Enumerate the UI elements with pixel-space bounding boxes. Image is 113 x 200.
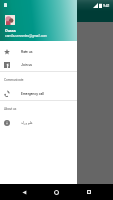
button[interactable]: هلو ورلد [0, 116, 77, 129]
staticText: About us [4, 107, 17, 111]
button[interactable]: Join us [0, 58, 77, 71]
staticText: Join us [21, 63, 33, 67]
staticText: Communicate [4, 78, 24, 82]
button[interactable]: Emergency call [0, 87, 77, 100]
button[interactable]: Back [16, 184, 33, 200]
staticText: Emergency call [21, 92, 45, 96]
staticText: Rate us [21, 50, 33, 54]
staticText: Ousss [5, 28, 16, 33]
staticText: camila.servantes@gmail.com [5, 34, 48, 38]
button[interactable]: Home [48, 184, 65, 200]
button[interactable]: Rate us [0, 45, 77, 58]
button[interactable]: Recents [80, 184, 97, 200]
staticText: هلو ورلد [21, 121, 33, 125]
staticText: 9:41 [103, 4, 110, 8]
